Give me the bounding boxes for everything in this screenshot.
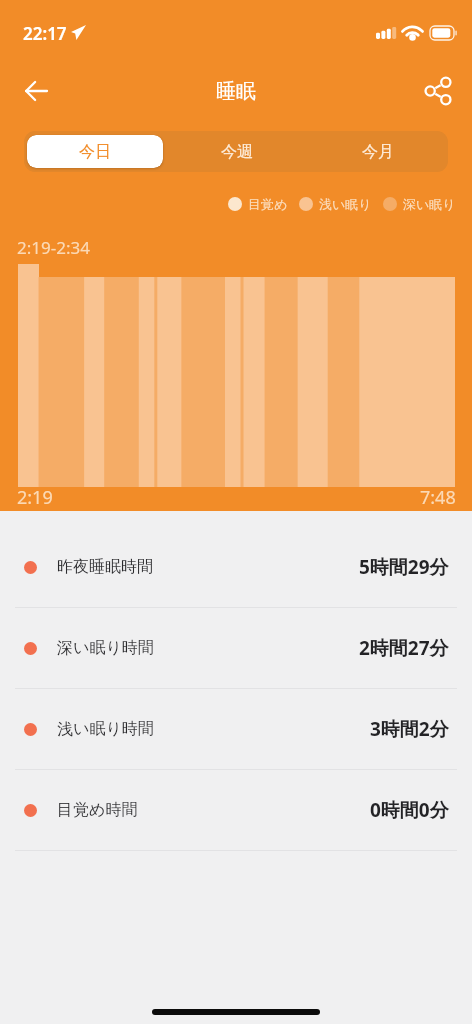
staticText: 今週 [221, 142, 253, 162]
staticText: 7:48 [420, 485, 456, 510]
staticText: 2時間27分 [359, 635, 449, 661]
staticText: 0時間0分 [370, 797, 449, 823]
button[interactable]: 目覚め時間 [0, 770, 472, 850]
staticText: 2:19 [17, 485, 53, 510]
button[interactable]: Back [14, 69, 58, 113]
button[interactable]: 今月 [310, 135, 445, 168]
button[interactable]: 今週 [169, 135, 304, 168]
staticText: 目覚め時間 [57, 800, 138, 820]
staticText: 浅い眠り [319, 196, 372, 212]
staticText: 浅い眠り時間 [57, 719, 154, 739]
staticText: 目覚め [248, 196, 288, 212]
button[interactable]: Share [416, 69, 460, 113]
staticText: 深い眠り [403, 196, 456, 212]
staticText: 深い眠り時間 [57, 638, 154, 658]
staticText: 睡眠 [216, 79, 256, 104]
staticText: 今日 [79, 142, 111, 162]
button[interactable]: 今日 [27, 135, 163, 168]
staticText: 2:19-2:34 [17, 236, 90, 259]
button[interactable]: 昨夜睡眠時間 [0, 527, 472, 607]
staticText: 3時間2分 [370, 716, 449, 742]
staticText: 5時間29分 [359, 554, 449, 580]
button[interactable]: 浅い眠り時間 [0, 689, 472, 769]
staticText: 22:17 [23, 22, 67, 45]
staticText: 昨夜睡眠時間 [57, 557, 153, 577]
button[interactable]: 深い眠り時間 [0, 608, 472, 688]
staticText: 今月 [362, 142, 394, 162]
